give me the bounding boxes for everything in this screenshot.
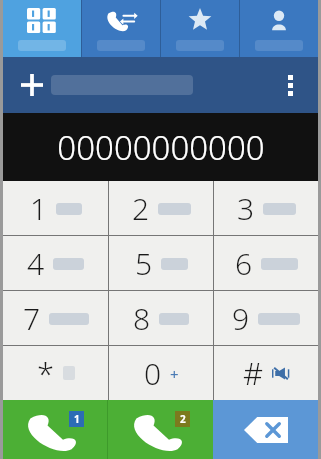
staticText: 4 — [27, 243, 45, 284]
staticText: + — [170, 364, 179, 384]
button[interactable]: 0 — [109, 346, 213, 400]
button[interactable]: Add contact — [13, 66, 51, 104]
button[interactable]: * — [3, 346, 108, 400]
staticText: 8 — [133, 298, 151, 339]
button[interactable]: Tab — [161, 0, 239, 57]
button[interactable]: Backspace — [213, 400, 318, 459]
staticText: 1 — [74, 412, 80, 426]
button[interactable]: Tab — [82, 0, 160, 57]
button[interactable]: 6 — [214, 236, 318, 290]
button[interactable]: 4 — [3, 236, 108, 290]
staticText: 6 — [235, 243, 253, 284]
staticText: 00000000000 — [57, 125, 265, 170]
staticText: 2 — [132, 188, 150, 229]
staticText: * — [37, 352, 55, 394]
staticText: 5 — [135, 243, 153, 284]
staticText: 0 — [144, 353, 162, 394]
button[interactable]: 8 — [109, 291, 213, 345]
button[interactable]: Call with SIM 2 — [108, 400, 213, 459]
staticText: 1 — [30, 188, 48, 229]
staticText: 2 — [180, 412, 186, 426]
button[interactable]: 7 — [3, 291, 108, 345]
button[interactable]: # — [214, 346, 318, 400]
button[interactable]: Call with SIM 1 — [3, 400, 107, 459]
staticText: # — [243, 352, 264, 394]
staticText: 3 — [237, 188, 255, 229]
button[interactable]: 2 — [109, 181, 213, 235]
button[interactable]: More options — [270, 65, 310, 105]
button[interactable]: 3 — [214, 181, 318, 235]
staticText: 7 — [23, 298, 41, 339]
button[interactable]: 5 — [109, 236, 213, 290]
button[interactable]: 9 — [214, 291, 318, 345]
button[interactable]: Keypad tab — [3, 0, 81, 57]
button[interactable]: 1 — [3, 181, 108, 235]
staticText: 9 — [232, 298, 250, 339]
button[interactable]: Tab — [240, 0, 318, 57]
